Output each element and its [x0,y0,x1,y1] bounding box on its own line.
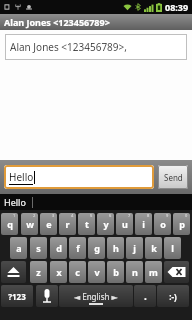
staticText: o [160,218,166,230]
staticText: x [56,266,62,278]
staticText: Alan Jones <123456789> [4,16,110,28]
staticText: 5 [90,213,93,218]
button[interactable]: e [40,213,57,235]
button[interactable]: a [10,237,27,259]
button[interactable]: n [126,261,143,283]
staticText: ?123 [8,291,26,302]
staticText: w [26,218,34,230]
button[interactable]: ?123 [1,285,33,307]
staticText: j [133,242,136,254]
staticText: . [144,289,147,303]
staticText: u [122,218,128,230]
staticText: h [113,242,119,254]
button[interactable]: l [164,237,181,259]
button[interactable]: v [88,261,105,283]
button[interactable]: . [134,285,156,307]
staticText: 1 [13,213,16,218]
button[interactable]: d [50,237,67,259]
button[interactable]: ◄ English ► [59,285,133,307]
staticText: 4 [71,213,74,218]
button[interactable]: h [107,237,124,259]
button[interactable]: o [154,213,171,235]
staticText: n [132,266,138,278]
button[interactable]: u [116,213,133,235]
button[interactable]: w [21,213,38,235]
staticText: 6 [109,213,112,218]
staticText: 9 [166,213,169,218]
button[interactable]: key [164,261,189,283]
staticText: k [151,242,157,254]
button[interactable]: f [69,237,86,259]
button[interactable]: x [50,261,67,283]
staticText: Alan Jones <123456789>, [10,40,127,54]
button[interactable]: m [145,261,162,283]
button[interactable]: Hello [4,165,154,189]
staticText: :-) [169,291,177,302]
staticText: s [36,242,41,254]
staticText: g [94,242,100,254]
staticText: Hello [4,196,26,208]
staticText: f [76,242,80,254]
staticText: b [113,266,119,278]
staticText: m [149,266,158,278]
button[interactable]: c [69,261,86,283]
button[interactable]: k [145,237,162,259]
button[interactable]: key [36,285,58,307]
button[interactable]: p [173,213,190,235]
staticText: e [46,218,52,230]
button[interactable]: b [107,261,124,283]
button[interactable]: g [88,237,105,259]
button[interactable]: j [126,237,143,259]
staticText: 3 [52,213,55,218]
staticText: v [94,266,100,278]
button[interactable]: y [97,213,114,235]
button[interactable]: key [1,261,26,283]
staticText: 8 [147,213,150,218]
staticText: ◄ English ► [74,291,118,302]
button[interactable]: i [135,213,152,235]
staticText: l [171,242,174,254]
staticText: a [16,242,22,254]
staticText: r [65,218,70,230]
staticText: 7 [128,213,131,218]
button[interactable]: Alan Jones <123456789> [0,14,192,30]
staticText: t [85,218,89,230]
staticText: 08:39 [165,1,189,13]
staticText: y [103,218,109,230]
staticText: p [179,218,185,230]
staticText: z [36,266,41,278]
staticText: c [75,266,80,278]
button[interactable]: t [78,213,95,235]
button[interactable]: :-) [157,285,189,307]
button[interactable]: q [1,213,18,235]
staticText: q [7,218,13,230]
button[interactable]: z [30,261,47,283]
staticText: 2 [33,213,36,218]
button[interactable]: r [59,213,76,235]
button[interactable]: Send [158,165,188,189]
staticText: i [142,218,145,230]
button[interactable]: s [30,237,47,259]
button[interactable]: Hello [4,196,26,208]
staticText: Hello [9,170,34,184]
staticText: Send [164,172,183,183]
staticText: 0 [185,213,188,218]
staticText: d [56,242,62,254]
button[interactable]: Alan Jones <123456789>, [5,34,187,60]
